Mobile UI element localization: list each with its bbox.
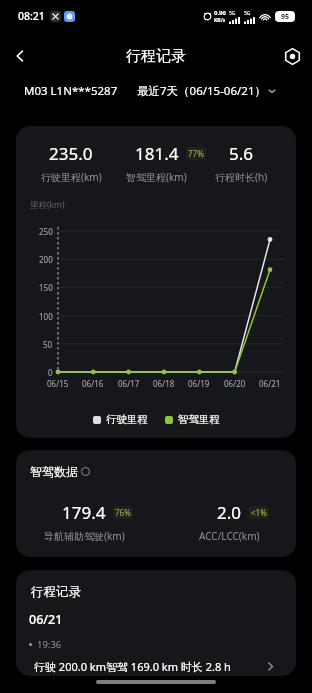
staticText: 智驾里程 <box>178 413 220 426</box>
staticText: 行驶里程 <box>106 413 148 426</box>
staticText: 50 <box>43 339 53 350</box>
staticText: 100 <box>39 311 53 322</box>
staticText: KB/s <box>214 17 226 24</box>
staticText: 06/15 <box>47 378 69 389</box>
staticText: 76% <box>115 507 131 518</box>
staticText: 95 <box>281 12 290 22</box>
staticText: 06/19 <box>188 378 210 389</box>
button[interactable]: Back <box>0 36 40 76</box>
staticText: 06/17 <box>118 378 140 389</box>
staticText: 179.4 <box>62 501 106 524</box>
staticText: 250 <box>39 226 53 237</box>
staticText: 06/18 <box>153 378 175 389</box>
staticText: M03 L1N***5287 <box>24 83 118 99</box>
staticText: 智驾里程(km) <box>126 170 187 184</box>
staticText: 77% <box>188 148 204 159</box>
staticText: 行驶 200.0 km智驾 169.0 km 时长 2.8 h <box>34 659 265 674</box>
button[interactable]: M03 L1N***5287 <box>24 83 118 99</box>
staticText: 200 <box>39 254 53 265</box>
staticText: 导航辅助驾驶(km) <box>44 529 125 543</box>
staticText: 行程时长(h) <box>215 170 268 184</box>
staticText: ACC/LCC(km) <box>199 529 260 543</box>
staticText: 150 <box>39 282 53 293</box>
staticText: 08:21 <box>18 9 45 23</box>
staticText: 5G <box>229 10 236 17</box>
button[interactable]: 最近7天（06/15-06/21） <box>137 83 277 99</box>
staticText: 5G <box>244 10 251 17</box>
staticText: 2.0 <box>217 501 242 524</box>
staticText: 0 <box>48 367 53 378</box>
button[interactable]: Settings <box>272 36 312 76</box>
staticText: 行驶里程(km) <box>41 170 102 184</box>
staticText: 06/20 <box>224 378 246 389</box>
staticText: 行程记录 <box>31 584 81 600</box>
staticText: 0.90 <box>214 9 226 17</box>
staticText: 235.0 <box>49 142 93 165</box>
staticText: 06/16 <box>82 378 104 389</box>
staticText: 行程记录 <box>126 47 186 66</box>
staticText: 5.6 <box>229 142 254 165</box>
staticText: 智驾数据 <box>30 464 78 479</box>
staticText: 19:36 <box>37 638 62 651</box>
staticText: 最近7天（06/15-06/21） <box>137 83 266 99</box>
staticText: 181.4 <box>135 142 179 165</box>
staticText: 06/21 <box>259 378 281 389</box>
staticText: 06/21 <box>29 611 63 628</box>
staticText: 里程(km) <box>30 199 65 211</box>
staticText: <1% <box>251 507 267 518</box>
button[interactable]: 行驶 200.0 km智驾 169.0 km 时长 2.8 h <box>16 656 296 676</box>
